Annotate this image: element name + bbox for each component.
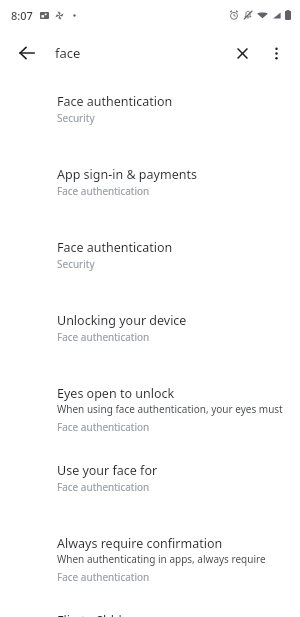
button[interactable]: Face authentication [0, 76, 300, 125]
staticText: Face authentication [57, 184, 150, 198]
button[interactable]: Face authentication [0, 198, 300, 271]
button[interactable]: Navigate up [8, 34, 46, 72]
staticText: face [55, 44, 224, 62]
staticText: Face authentication [57, 239, 173, 256]
staticText: Face authentication [57, 93, 173, 110]
staticText: 8:07 [11, 8, 33, 23]
staticText: Security [57, 111, 95, 125]
staticText: Always require confirmation [57, 535, 223, 552]
staticText: Eyes open to unlock [57, 385, 175, 402]
staticText: Flip to Shhh [57, 612, 127, 617]
button[interactable]: App sign-in & payments [0, 125, 300, 198]
button[interactable]: Eyes open to unlock [0, 344, 300, 434]
staticText: When using face authentication, your eye… [57, 402, 292, 416]
staticText: When authenticating in apps, always requ… [57, 552, 292, 566]
button[interactable]: Unlocking your device [0, 271, 300, 344]
button[interactable]: More options [260, 37, 292, 69]
button[interactable]: Flip to Shhh [0, 584, 300, 617]
button[interactable]: Clear text [224, 35, 260, 71]
staticText: Face authentication [57, 480, 150, 494]
staticText: Face authentication [57, 420, 150, 434]
button[interactable]: Use your face for [0, 434, 300, 494]
staticText: Unlocking your device [57, 312, 187, 329]
staticText: Use your face for [57, 462, 158, 479]
button[interactable]: Always require confirmation [0, 494, 300, 584]
staticText: Face authentication [57, 330, 150, 344]
staticText: Security [57, 257, 95, 271]
staticText: Face authentication [57, 570, 150, 584]
staticText: App sign-in & payments [57, 166, 197, 183]
